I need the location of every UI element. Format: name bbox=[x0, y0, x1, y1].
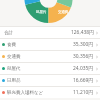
staticText: 126,438円 bbox=[71, 29, 94, 36]
staticText: 16,669円 bbox=[73, 77, 94, 84]
staticText: 24,035円 bbox=[73, 65, 94, 72]
button[interactable]: 部屋代 bbox=[0, 63, 100, 74]
staticText: 食費 bbox=[7, 42, 16, 48]
button[interactable]: 観光費入場料など bbox=[0, 87, 100, 98]
staticText: 交通費 bbox=[58, 10, 69, 14]
button[interactable]: 日用品 bbox=[0, 75, 100, 86]
button[interactable]: 交通費 bbox=[0, 51, 100, 62]
staticText: 合計 bbox=[4, 30, 13, 36]
staticText: 部屋代 bbox=[36, 10, 47, 14]
staticText: 観光費入場料など bbox=[7, 90, 44, 96]
button[interactable]: 合計 bbox=[0, 27, 100, 38]
button[interactable]: 食費 bbox=[0, 39, 100, 50]
staticText: 日用品 bbox=[7, 78, 21, 84]
staticText: 11,210円 bbox=[73, 89, 94, 96]
staticText: 30,356円 bbox=[73, 53, 94, 60]
staticText: 部屋代 bbox=[7, 66, 21, 72]
staticText: 交通費 bbox=[7, 54, 21, 60]
staticText: 35,300円 bbox=[73, 41, 94, 48]
